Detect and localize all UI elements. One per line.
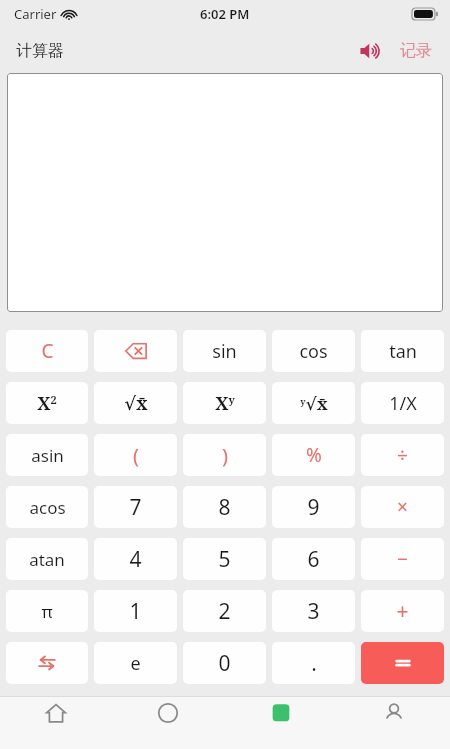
staticText: + — [396, 597, 409, 626]
button[interactable]: X2 — [6, 382, 88, 424]
staticText: 4 — [129, 545, 142, 574]
staticText: − — [397, 546, 408, 572]
staticText: 计算器 — [16, 41, 64, 61]
staticText: 记录 — [400, 41, 432, 61]
staticText: Carrier — [14, 5, 57, 23]
button[interactable]: 2 — [183, 590, 266, 632]
staticText: % — [306, 442, 322, 468]
button[interactable]: ÷ — [361, 434, 444, 476]
staticText: sin — [212, 339, 237, 364]
staticText: 1 — [129, 597, 142, 626]
staticText: 7 — [129, 493, 142, 522]
staticText: Xy — [215, 391, 235, 416]
staticText: × — [397, 494, 408, 520]
staticText: π — [41, 600, 53, 623]
button[interactable]: Swap — [6, 642, 88, 684]
staticText: tan — [389, 339, 417, 364]
button[interactable]: . — [272, 642, 355, 684]
button[interactable]: Backspace — [94, 330, 177, 372]
staticText: √x̄ — [124, 391, 148, 416]
button[interactable]: Apps — [224, 702, 337, 724]
staticText: acos — [29, 496, 66, 519]
button[interactable]: Sound — [354, 34, 388, 68]
button[interactable]: asin — [6, 434, 88, 476]
button[interactable]: π — [6, 590, 88, 632]
staticText: 5 — [218, 545, 231, 574]
staticText: ) — [222, 442, 228, 469]
button[interactable]: acos — [6, 486, 88, 528]
button[interactable]: ) — [183, 434, 266, 476]
button[interactable]: y√x̄ — [272, 382, 355, 424]
button[interactable]: 8 — [183, 486, 266, 528]
button[interactable]: ( — [94, 434, 177, 476]
button[interactable]: Home — [0, 702, 112, 724]
button[interactable]: 记录 — [396, 35, 436, 67]
staticText: cos — [299, 339, 328, 364]
button[interactable]: cos — [272, 330, 355, 372]
button[interactable]: − — [361, 538, 444, 580]
staticText: C — [41, 338, 54, 364]
button[interactable]: + — [361, 590, 444, 632]
staticText: 9 — [307, 493, 320, 522]
button[interactable]: √x̄ — [94, 382, 177, 424]
button[interactable]: 7 — [94, 486, 177, 528]
button[interactable]: 4 — [94, 538, 177, 580]
staticText: . — [311, 649, 317, 678]
staticText: y√x̄ — [300, 392, 328, 415]
staticText: 3 — [307, 597, 320, 626]
button[interactable]: % — [272, 434, 355, 476]
staticText: ÷ — [397, 442, 408, 468]
staticText: 2 — [218, 597, 231, 626]
button[interactable]: 1/X — [361, 382, 444, 424]
staticText: 6:02 PM — [200, 5, 250, 23]
button[interactable]: Xy — [183, 382, 266, 424]
staticText: 0 — [218, 649, 231, 678]
button[interactable]: 1 — [94, 590, 177, 632]
button[interactable]: Equals — [361, 642, 444, 684]
staticText: 1/X — [389, 391, 417, 416]
staticText: asin — [31, 444, 64, 467]
button[interactable]: atan — [6, 538, 88, 580]
button[interactable]: 0 — [183, 642, 266, 684]
staticText: ( — [133, 442, 139, 469]
button[interactable]: tan — [361, 330, 444, 372]
button[interactable]: × — [361, 486, 444, 528]
button[interactable]: sin — [183, 330, 266, 372]
button[interactable]: 9 — [272, 486, 355, 528]
button[interactable]: 5 — [183, 538, 266, 580]
button[interactable]: 6 — [272, 538, 355, 580]
button[interactable]: C — [6, 330, 88, 372]
staticText: e — [130, 651, 141, 676]
staticText: 8 — [218, 493, 231, 522]
staticText: atan — [29, 548, 65, 571]
button[interactable]: e — [94, 642, 177, 684]
button[interactable]: Profile — [337, 702, 450, 724]
button[interactable]: 3 — [272, 590, 355, 632]
button[interactable]: Chat — [112, 702, 224, 724]
staticText: 6 — [307, 545, 320, 574]
staticText: X2 — [37, 391, 57, 416]
